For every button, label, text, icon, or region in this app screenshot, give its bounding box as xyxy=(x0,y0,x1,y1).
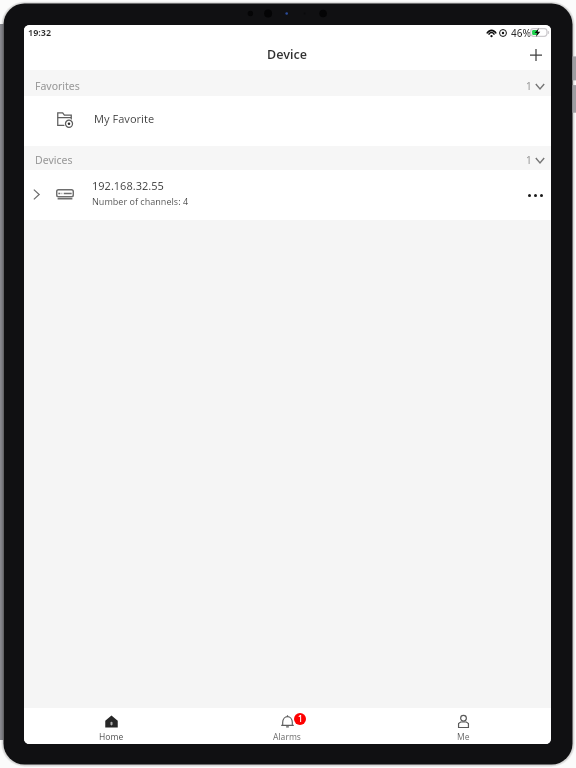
button[interactable]: Devices xyxy=(24,146,551,170)
button[interactable]: Add device xyxy=(520,40,551,70)
button[interactable]: My Favorite xyxy=(24,96,551,146)
staticText: 1 xyxy=(298,713,303,725)
staticText: 1 xyxy=(526,79,532,93)
staticText: 192.168.32.55 xyxy=(92,178,164,193)
staticText: Devices xyxy=(35,153,73,167)
staticText: Number of channels: 4 xyxy=(92,195,189,207)
staticText: Home xyxy=(99,731,124,743)
staticText: Alarms xyxy=(273,731,301,743)
staticText: Device xyxy=(267,46,308,63)
staticText: 19:32 xyxy=(28,26,52,38)
staticText: 1 xyxy=(526,153,532,167)
button[interactable]: Favorites xyxy=(24,70,551,96)
staticText: My Favorite xyxy=(94,111,155,126)
staticText: 46% xyxy=(511,26,531,40)
button[interactable]: More options xyxy=(520,170,551,220)
button[interactable]: 1 xyxy=(199,708,375,744)
staticText: Favorites xyxy=(35,79,80,93)
button[interactable]: 192.168.32.55 xyxy=(24,170,551,220)
staticText: Me xyxy=(457,731,470,743)
button[interactable]: Me xyxy=(375,708,551,744)
button[interactable]: Home xyxy=(24,708,199,744)
